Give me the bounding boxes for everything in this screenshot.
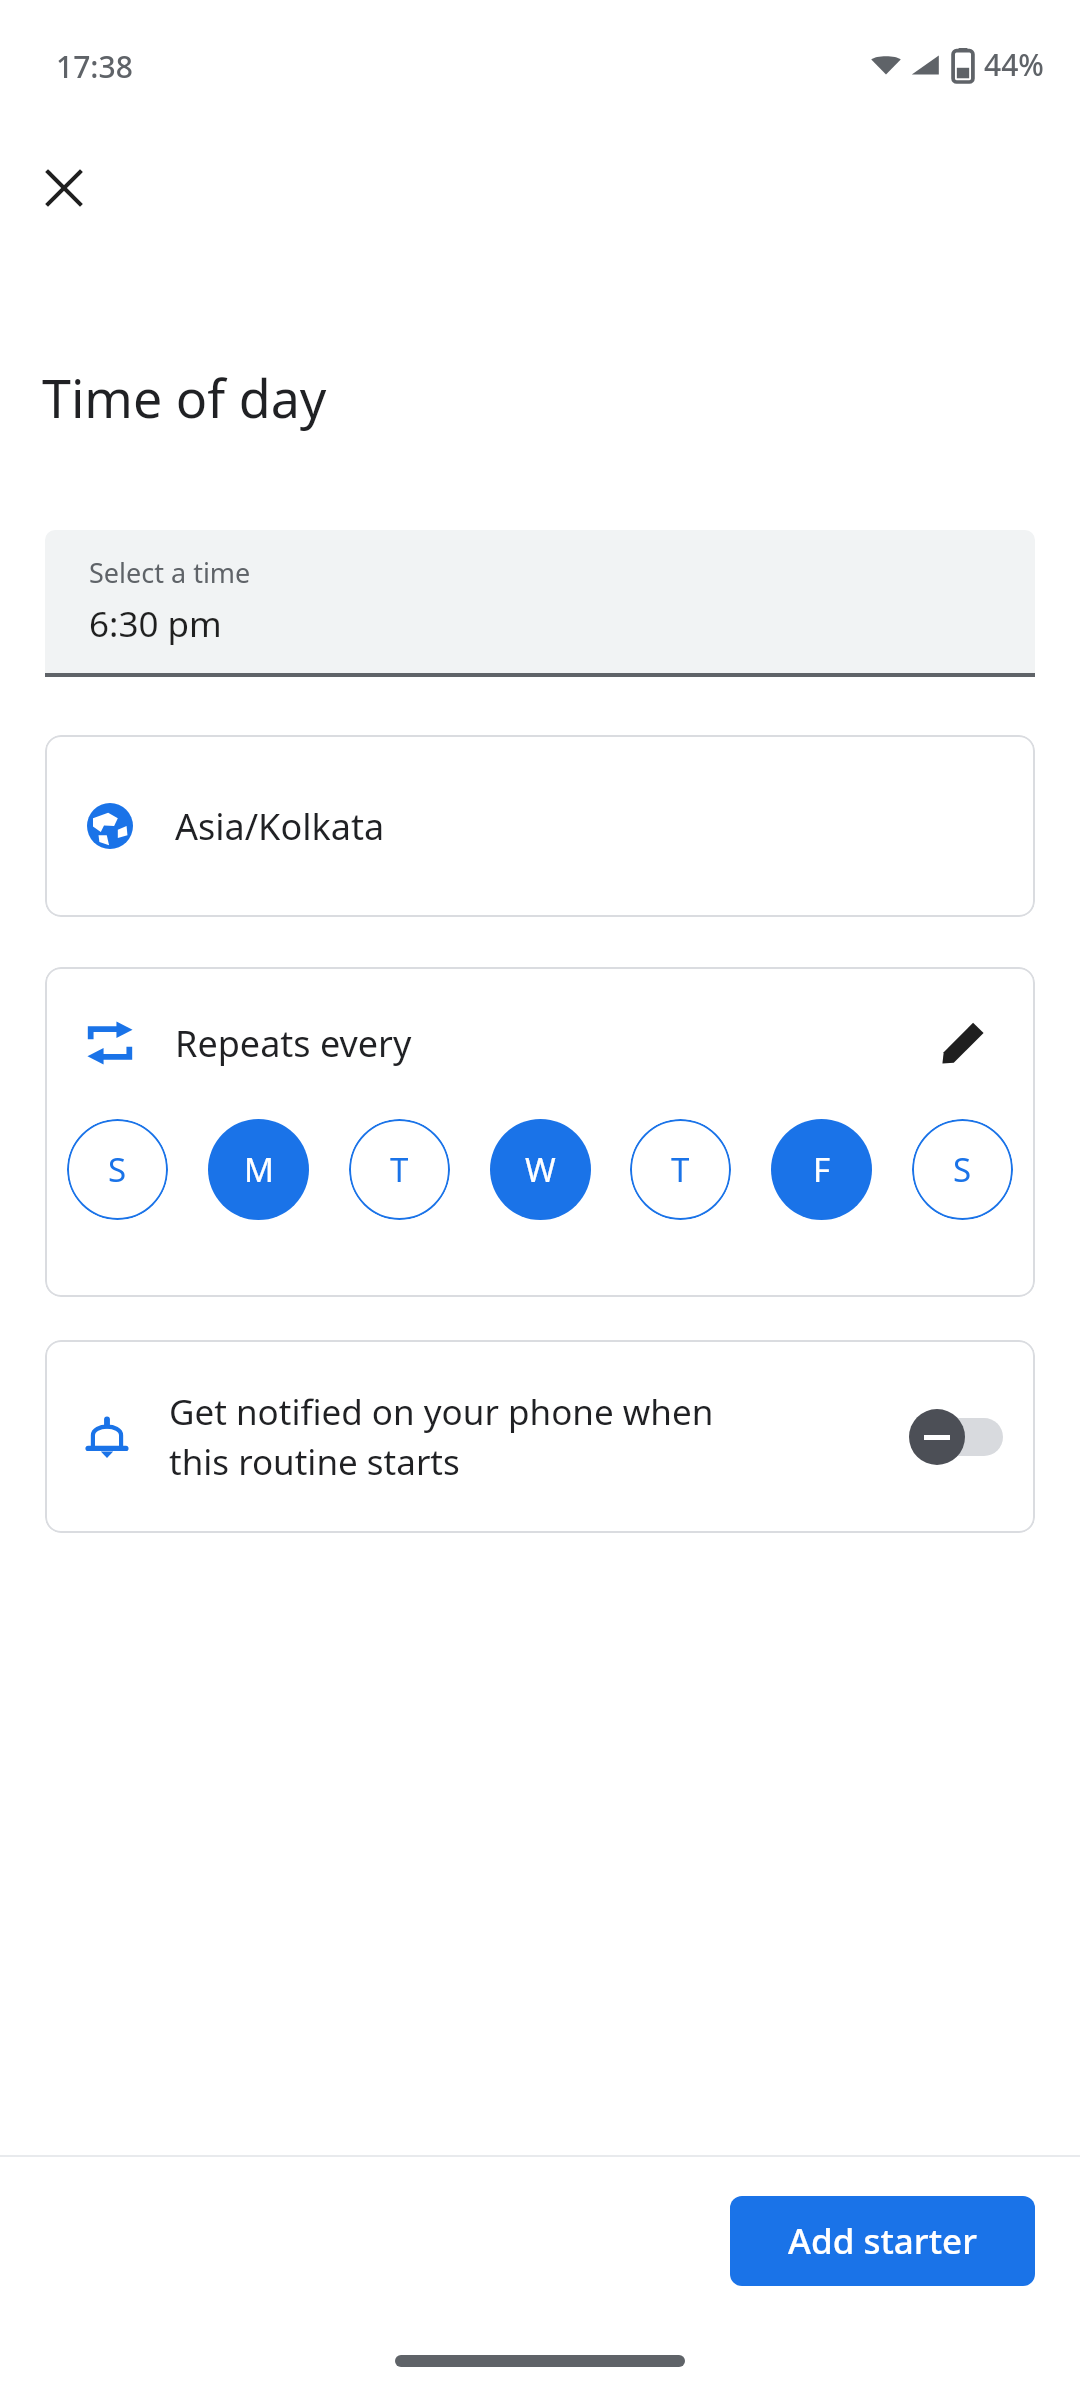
staticText: 44% [984, 44, 1044, 85]
staticText: Select a time [89, 554, 251, 591]
staticText: W [525, 1147, 556, 1192]
button[interactable]: S [912, 1119, 1013, 1220]
button[interactable]: F [771, 1119, 872, 1220]
staticText: F [813, 1147, 831, 1192]
staticText: T [671, 1147, 690, 1192]
staticText: T [390, 1147, 409, 1192]
staticText: M [244, 1147, 274, 1192]
button[interactable]: Get notified toggle, off [909, 1408, 1003, 1466]
button[interactable]: Edit repeat schedule [925, 1005, 1001, 1081]
button[interactable]: M [208, 1119, 309, 1220]
staticText: Get notified on your phone when this rou… [169, 1388, 749, 1485]
staticText: 6:30 pm [89, 600, 222, 648]
button[interactable]: S [67, 1119, 168, 1220]
button[interactable]: Add starter [730, 2196, 1035, 2286]
button[interactable]: Close [16, 140, 112, 236]
staticText: Repeats every [175, 1019, 925, 1068]
staticText: Time of day [42, 362, 327, 433]
staticText: S [108, 1147, 127, 1192]
button[interactable]: T [349, 1119, 450, 1220]
button[interactable]: Select a time [45, 530, 1035, 673]
button[interactable]: T [630, 1119, 731, 1220]
staticText: 17:38 [56, 46, 133, 87]
button[interactable]: Asia/Kolkata [45, 735, 1035, 917]
staticText: Add starter [788, 2217, 977, 2265]
staticText: S [953, 1147, 972, 1192]
button[interactable]: Get notified on your phone when this rou… [45, 1340, 1035, 1533]
button[interactable]: W [490, 1119, 591, 1220]
staticText: Asia/Kolkata [175, 802, 385, 851]
